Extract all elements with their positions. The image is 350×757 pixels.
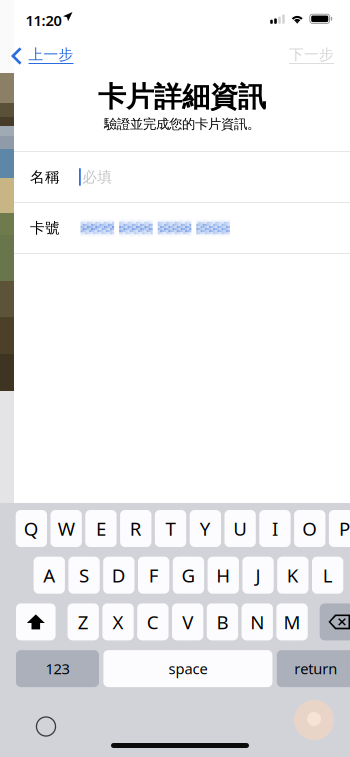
staticText: E <box>96 516 106 541</box>
button[interactable]: 上一步 <box>11 44 79 68</box>
staticText: U <box>233 516 247 541</box>
button[interactable]: L <box>312 557 343 594</box>
staticText: 上一步 <box>28 45 73 63</box>
button[interactable]: space <box>103 650 272 687</box>
button[interactable]: U <box>224 510 256 547</box>
staticText: T <box>165 516 175 541</box>
button[interactable]: O <box>294 510 325 547</box>
button[interactable]: 下一步 <box>286 44 337 68</box>
staticText: L <box>323 563 333 588</box>
staticText: R <box>130 516 142 541</box>
button[interactable]: S <box>68 557 100 594</box>
staticText: O <box>302 516 317 541</box>
button[interactable]: Z <box>68 603 99 640</box>
staticText: Z <box>78 609 89 634</box>
staticText: G <box>181 563 195 588</box>
staticText: N <box>250 609 264 634</box>
button[interactable]: P <box>329 510 350 547</box>
staticText: Q <box>24 516 39 541</box>
button[interactable]: return <box>277 650 350 687</box>
button[interactable]: K <box>277 557 308 594</box>
button[interactable]: T <box>155 510 186 547</box>
staticText: C <box>147 609 159 634</box>
button[interactable]: C <box>137 603 168 640</box>
staticText: space <box>168 659 207 678</box>
button[interactable]: B <box>207 603 238 640</box>
button[interactable]: 名稱 <box>14 152 350 202</box>
staticText: F <box>149 563 159 588</box>
staticText: K <box>287 563 299 588</box>
staticText: J <box>256 563 261 588</box>
button[interactable]: I <box>259 510 291 547</box>
button[interactable]: M <box>276 603 308 640</box>
button[interactable]: 123 <box>16 650 99 687</box>
staticText: X <box>112 609 123 634</box>
staticText: M <box>283 609 300 634</box>
button[interactable]: Next keyboard <box>35 715 57 737</box>
staticText: B <box>216 609 228 634</box>
staticText: 卡片詳細資訊 <box>98 80 266 114</box>
staticText: V <box>182 609 193 634</box>
staticText: 下一步 <box>289 45 334 63</box>
button[interactable]: X <box>102 603 134 640</box>
staticText: I <box>272 516 278 541</box>
button[interactable]: H <box>208 557 239 594</box>
button[interactable]: G <box>173 557 204 594</box>
button[interactable]: R <box>120 510 151 547</box>
staticText: P <box>339 516 350 541</box>
staticText: S <box>79 563 89 588</box>
staticText: 11:20 <box>25 10 61 30</box>
button[interactable]: J <box>242 557 274 594</box>
button[interactable]: Q <box>16 510 47 547</box>
button[interactable]: E <box>85 510 117 547</box>
button[interactable]: N <box>242 603 273 640</box>
button[interactable]: D <box>103 557 134 594</box>
staticText: D <box>112 563 126 588</box>
button[interactable]: V <box>172 603 203 640</box>
button[interactable]: Shift <box>16 603 56 640</box>
button[interactable]: 卡號 <box>14 203 350 253</box>
staticText: 必填 <box>82 168 112 186</box>
staticText: H <box>216 563 230 588</box>
staticText: Y <box>200 516 211 541</box>
staticText: 名稱 <box>30 168 60 186</box>
button[interactable]: F <box>138 557 169 594</box>
button[interactable]: A <box>34 557 65 594</box>
staticText: 驗證並完成您的卡片資訊。 <box>104 116 260 132</box>
staticText: W <box>58 516 75 541</box>
staticText: 123 <box>45 659 69 678</box>
button[interactable]: Delete <box>320 603 350 640</box>
button[interactable]: Y <box>190 510 221 547</box>
staticText: return <box>294 659 337 678</box>
staticText: 卡號 <box>30 219 60 237</box>
staticText: A <box>43 563 55 588</box>
button[interactable]: W <box>50 510 82 547</box>
